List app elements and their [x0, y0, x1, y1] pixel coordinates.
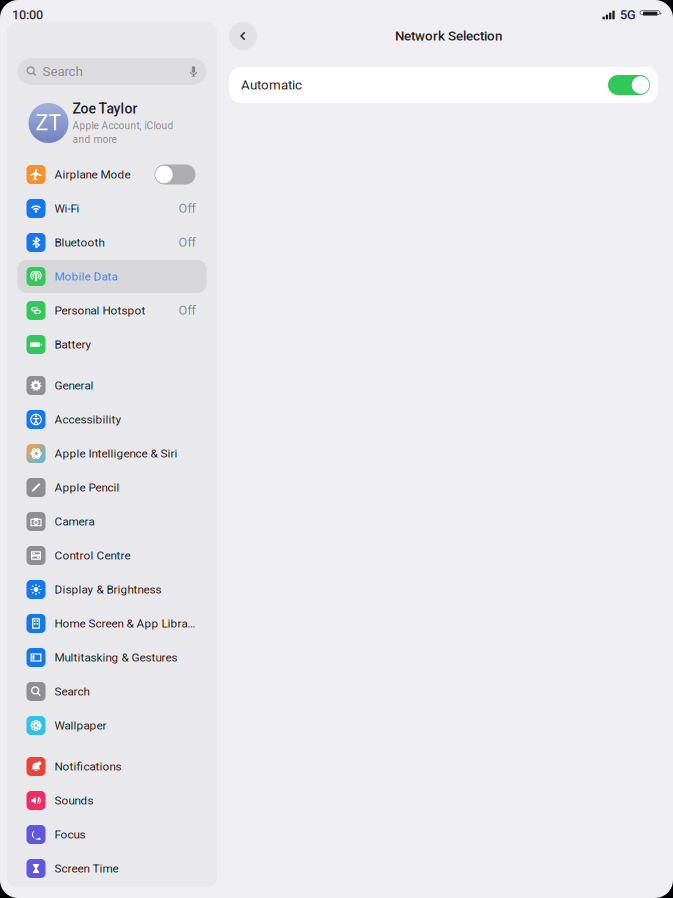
button[interactable]: Control Centre: [17, 539, 206, 572]
staticText: Camera: [54, 515, 94, 528]
staticText: Focus: [54, 828, 85, 841]
staticText: and more: [72, 134, 116, 146]
button[interactable]: Home Screen & App Library: [17, 607, 206, 640]
button[interactable]: Personal Hotspot: [17, 294, 206, 327]
button[interactable]: Accessibility: [17, 403, 206, 436]
staticText: Automatic: [241, 77, 302, 93]
staticText: ZT: [35, 110, 61, 135]
staticText: Sounds: [54, 794, 93, 807]
button[interactable]: Back: [229, 22, 257, 50]
button[interactable]: Apple Intelligence & Siri: [17, 437, 206, 470]
button[interactable]: Search: [17, 675, 206, 708]
button[interactable]: Sounds: [17, 784, 206, 817]
staticText: Off: [178, 201, 195, 216]
button[interactable]: Screen Time: [17, 852, 206, 885]
staticText: Apple Pencil: [54, 481, 119, 494]
staticText: Off: [178, 235, 195, 250]
button[interactable]: Battery: [17, 328, 206, 361]
staticText: Search: [42, 64, 82, 79]
staticText: Zoe Taylor: [72, 100, 137, 117]
staticText: Apple Intelligence & Siri: [54, 447, 177, 460]
staticText: Notifications: [54, 760, 121, 773]
staticText: Battery: [54, 338, 91, 351]
staticText: General: [54, 379, 93, 392]
button[interactable]: General: [17, 369, 206, 402]
staticText: 10:00: [12, 8, 43, 22]
button[interactable]: Apple Pencil: [17, 471, 206, 504]
button[interactable]: Camera: [17, 505, 206, 538]
button[interactable]: Automatic: [229, 67, 658, 103]
staticText: Personal Hotspot: [54, 304, 145, 317]
button[interactable]: Display & Brightness: [17, 573, 206, 606]
staticText: Airplane Mode: [54, 168, 130, 181]
button[interactable]: Notifications: [17, 750, 206, 783]
button[interactable]: Bluetooth: [17, 226, 206, 259]
staticText: Accessibility: [54, 413, 121, 426]
staticText: Search: [54, 685, 89, 698]
button[interactable]: Wi-Fi: [17, 192, 206, 225]
staticText: Multitasking & Gestures: [54, 651, 177, 664]
button[interactable]: Wallpaper: [17, 709, 206, 742]
staticText: Bluetooth: [54, 236, 104, 249]
staticText: Mobile Data: [54, 270, 117, 283]
button[interactable]: Multitasking & Gestures: [17, 641, 206, 674]
button[interactable]: ZT: [17, 98, 206, 148]
button[interactable]: Mobile Data: [17, 260, 206, 293]
staticText: Apple Account, iCloud: [72, 120, 173, 132]
button[interactable]: Airplane Mode: [17, 158, 206, 191]
staticText: Home Screen & App Library: [54, 617, 195, 630]
button[interactable]: Focus: [17, 818, 206, 851]
staticText: 5G: [620, 8, 636, 22]
staticText: Off: [178, 303, 195, 318]
staticText: Wi-Fi: [54, 202, 79, 215]
staticText: Network Selection: [395, 28, 502, 44]
staticText: Screen Time: [54, 862, 118, 875]
staticText: Wallpaper: [54, 719, 106, 732]
staticText: Control Centre: [54, 549, 130, 562]
staticText: Display & Brightness: [54, 583, 161, 596]
